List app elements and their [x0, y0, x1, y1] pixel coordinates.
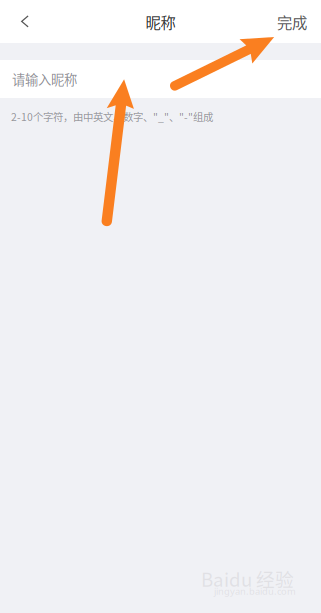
staticText: 2-10个字符，由中英文、数字、"_"、"-"组成	[11, 109, 213, 124]
staticText: 完成	[277, 10, 307, 33]
button[interactable]: Back	[0, 0, 50, 43]
staticText: 请输入昵称	[12, 69, 77, 89]
button[interactable]: 请输入昵称	[0, 60, 321, 98]
staticText: 昵称	[145, 10, 175, 33]
staticText: Baidu 经验	[201, 565, 294, 592]
staticText: jingyan.baidu.com	[214, 585, 296, 597]
button[interactable]: 完成	[277, 0, 321, 43]
